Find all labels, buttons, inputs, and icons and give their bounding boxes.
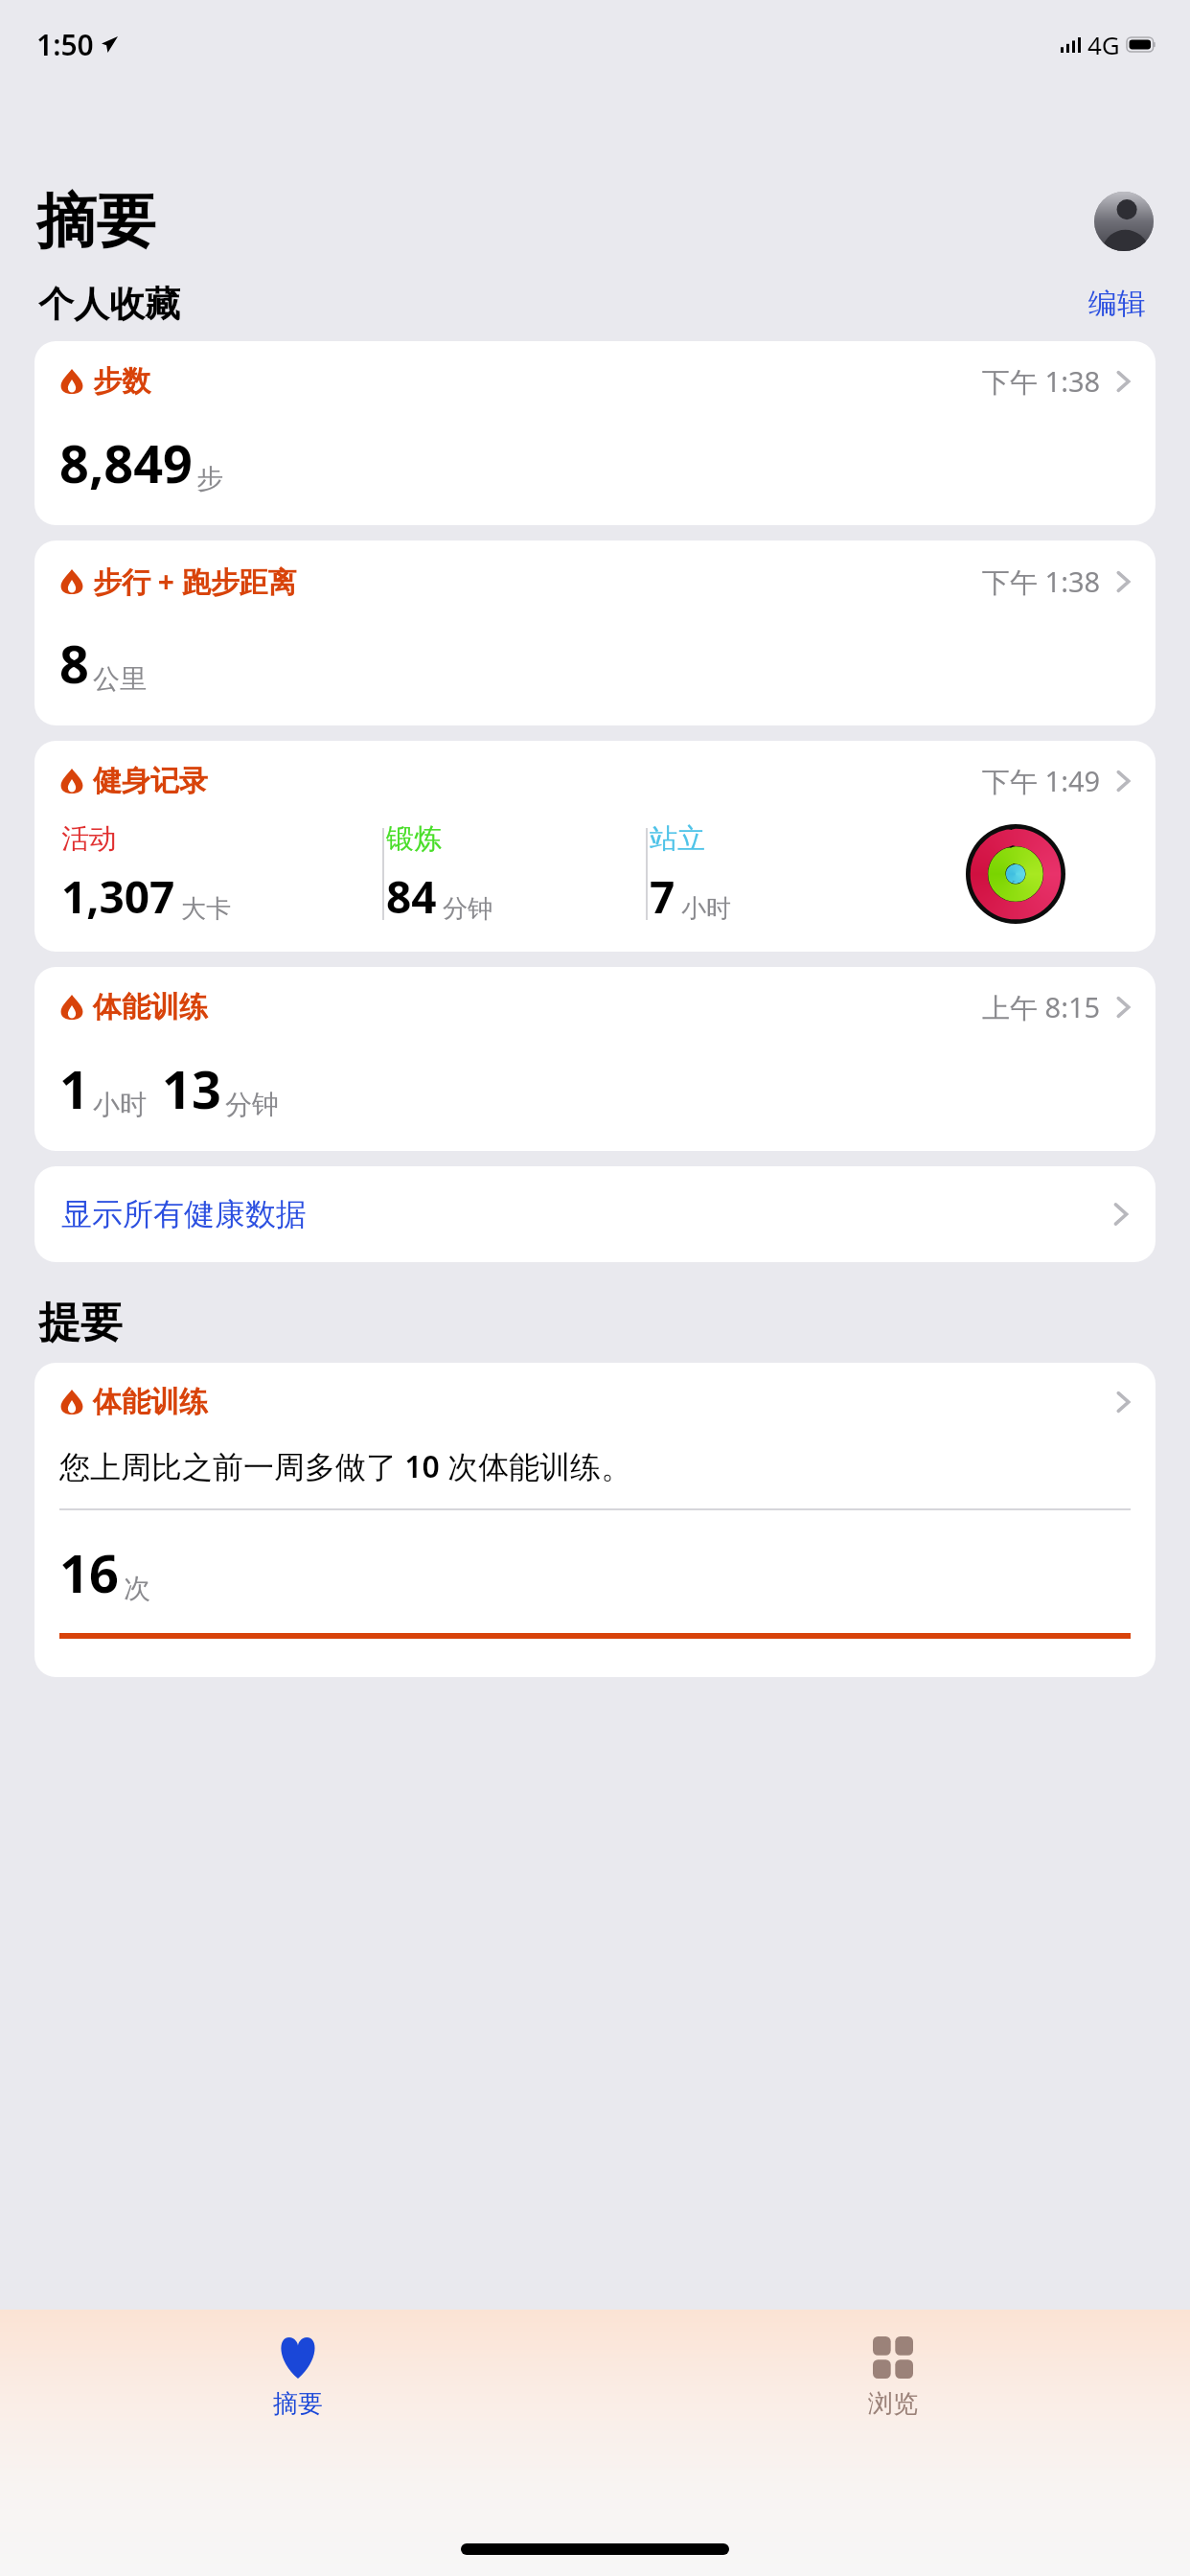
button[interactable]: 体能训练 <box>34 1363 1156 1677</box>
staticText: 7 <box>650 866 675 927</box>
button[interactable]: 健身记录 <box>34 741 1156 952</box>
staticText: 1:50 <box>36 25 94 64</box>
staticText: 次 <box>124 1572 150 1605</box>
staticText: 健身记录 <box>93 763 208 799</box>
staticText: 步行 + 跑步距离 <box>93 562 297 601</box>
staticText: 提要 <box>38 1297 123 1349</box>
button[interactable]: Profile <box>1094 192 1154 251</box>
staticText: 下午 1:38 <box>982 362 1101 401</box>
staticText: 编辑 <box>1088 286 1146 322</box>
staticText: 您上周比之前一周多做了 10 次体能训练。 <box>59 1445 632 1487</box>
staticText: 锻炼 <box>386 821 442 857</box>
staticText: 体能训练 <box>93 989 208 1025</box>
button[interactable]: 编辑 <box>1083 280 1152 328</box>
staticText: 下午 1:49 <box>982 762 1101 800</box>
button[interactable]: 浏览 <box>595 2331 1190 2426</box>
staticText: 小时 <box>681 893 731 925</box>
button[interactable]: 体能训练 <box>34 967 1156 1151</box>
staticText: 8 <box>59 628 89 699</box>
staticText: 体能训练 <box>93 1384 208 1420</box>
staticText: 小时 <box>93 1088 147 1121</box>
staticText: 摘要 <box>273 2388 323 2420</box>
staticText: 站立 <box>650 821 705 857</box>
button[interactable]: 步数 <box>34 341 1156 525</box>
button[interactable]: 摘要 <box>0 2331 595 2426</box>
staticText: 步 <box>196 462 223 495</box>
staticText: 摘要 <box>36 184 155 259</box>
staticText: 大卡 <box>181 893 231 925</box>
staticText: 上午 8:15 <box>982 988 1101 1026</box>
staticText: 公里 <box>93 662 147 696</box>
staticText: 下午 1:38 <box>982 563 1101 601</box>
staticText: 1,307 <box>61 866 175 927</box>
staticText: 个人收藏 <box>38 282 180 327</box>
staticText: 4G <box>1087 28 1120 61</box>
staticText: 分钟 <box>443 893 492 925</box>
staticText: 步数 <box>93 363 150 400</box>
staticText: 13 <box>162 1053 221 1124</box>
staticText: 活动 <box>61 821 117 857</box>
button[interactable]: 步行 + 跑步距离 <box>34 540 1156 725</box>
staticText: 16 <box>59 1537 119 1608</box>
staticText: 84 <box>386 866 437 927</box>
button[interactable]: 显示所有健康数据 <box>34 1166 1156 1262</box>
staticText: 1 <box>59 1053 89 1124</box>
staticText: 浏览 <box>868 2388 918 2420</box>
staticText: 分钟 <box>225 1088 279 1121</box>
staticText: 8,849 <box>59 427 193 498</box>
staticText: 显示所有健康数据 <box>61 1195 307 1233</box>
